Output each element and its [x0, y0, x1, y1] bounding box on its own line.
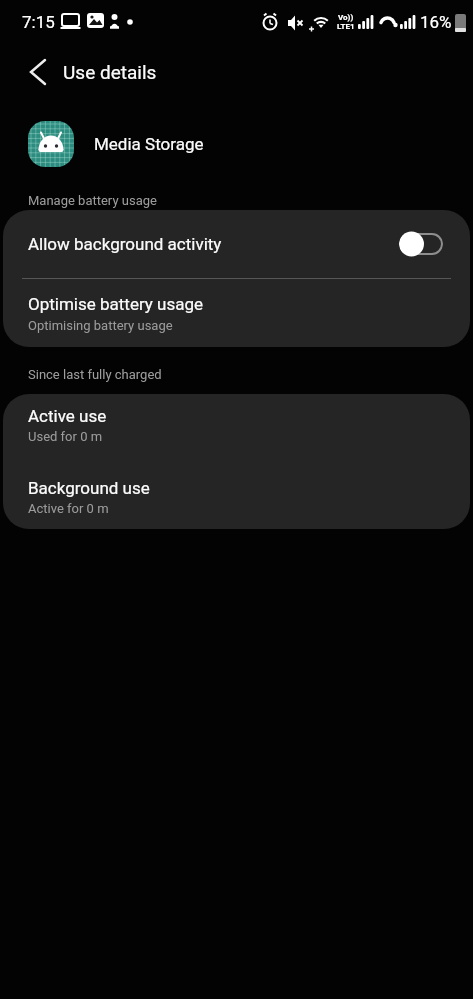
staticText: Allow background activity	[28, 234, 222, 254]
button[interactable]: Media Storage	[28, 121, 473, 167]
button[interactable]: Active use	[3, 394, 470, 459]
staticText: Since last fully charged	[28, 367, 162, 382]
staticText: LTE1	[337, 22, 355, 31]
button[interactable]: Optimise battery usage	[3, 279, 470, 347]
staticText: Media Storage	[94, 134, 204, 154]
button[interactable]: Background use	[3, 459, 470, 529]
button[interactable]	[0, 44, 56, 100]
staticText: Active use	[28, 406, 107, 426]
staticText: 7:15	[22, 12, 55, 32]
button[interactable]	[399, 230, 443, 258]
staticText: Background use	[28, 478, 150, 498]
staticText: Optimise battery usage	[28, 294, 204, 314]
staticText: Used for 0 m	[28, 429, 103, 444]
staticText: Use details	[63, 61, 157, 83]
button[interactable]: Allow background activity	[3, 210, 470, 278]
staticText: 16%	[420, 12, 452, 32]
staticText: Active for 0 m	[28, 501, 109, 516]
staticText: Optimising battery usage	[28, 318, 173, 333]
staticText: Vo))	[338, 13, 354, 22]
staticText: Manage battery usage	[28, 193, 157, 208]
